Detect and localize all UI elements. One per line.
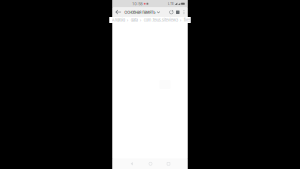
button[interactable]: Recent apps — [159, 159, 177, 169]
button[interactable]: Back — [123, 159, 141, 169]
staticText: Основная память — [124, 10, 155, 15]
button[interactable]: Home — [141, 159, 159, 169]
button[interactable]: Основная память — [124, 7, 160, 17]
button[interactable]: Refresh — [168, 7, 175, 17]
staticText: LTE — [168, 2, 174, 6]
button[interactable]: More options — [181, 7, 187, 17]
staticText: Android › data › com.telus.siteview3 › f… — [112, 18, 191, 22]
staticText: 10:58 — [132, 1, 142, 6]
button[interactable]: Switch layout — [175, 7, 181, 17]
button[interactable]: Back — [114, 7, 123, 17]
